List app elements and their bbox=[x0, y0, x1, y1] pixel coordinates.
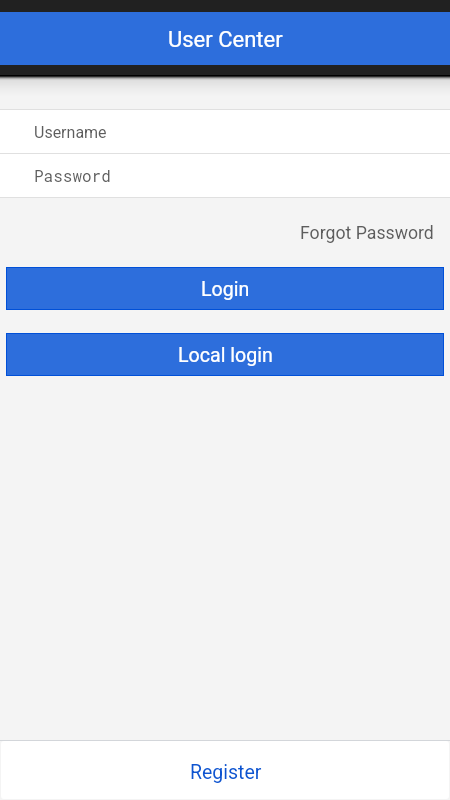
button[interactable]: Password bbox=[0, 154, 450, 197]
button[interactable]: Login bbox=[6, 267, 444, 310]
staticText: Login bbox=[201, 278, 250, 301]
staticText: Forgot Password bbox=[300, 223, 434, 244]
button[interactable]: Username bbox=[0, 110, 450, 153]
button[interactable]: Register bbox=[1, 741, 449, 799]
button[interactable]: Local login bbox=[6, 333, 444, 376]
staticText: Register bbox=[190, 761, 262, 784]
staticText: Username bbox=[34, 123, 107, 142]
staticText: Local login bbox=[178, 344, 273, 367]
staticText: User Center bbox=[168, 27, 283, 53]
button[interactable]: Forgot Password bbox=[300, 221, 450, 244]
staticText: Password bbox=[34, 165, 111, 186]
